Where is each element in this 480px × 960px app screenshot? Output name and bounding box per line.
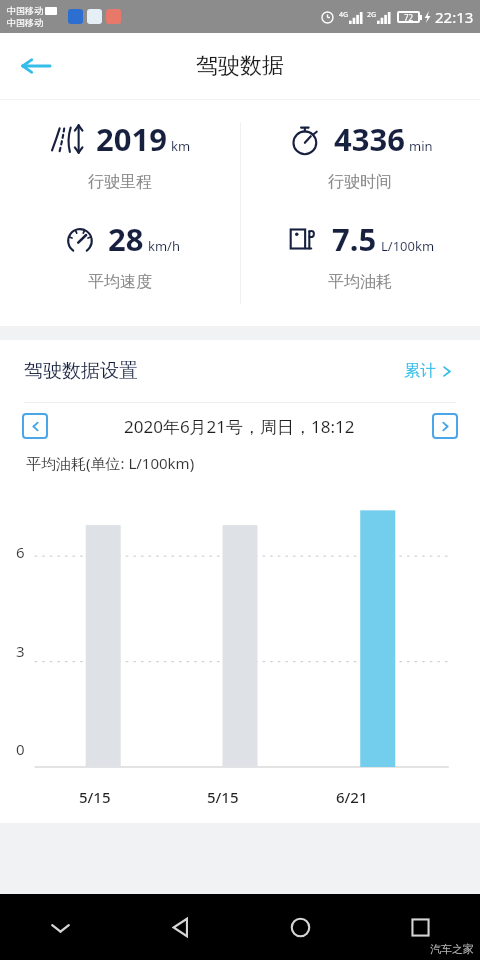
- button[interactable]: Previous day: [22, 413, 48, 439]
- staticText: 4336: [334, 118, 405, 160]
- staticText: 平均速度: [88, 272, 152, 292]
- staticText: 3: [16, 641, 25, 661]
- button[interactable]: 4336: [240, 116, 480, 192]
- staticText: 5/15: [207, 787, 239, 807]
- staticText: 0: [16, 739, 25, 759]
- staticText: 4G: [339, 10, 349, 20]
- staticText: 2019: [96, 118, 167, 160]
- staticText: 平均油耗(单位: L/100km): [26, 453, 195, 473]
- button[interactable]: Back: [120, 894, 240, 960]
- staticText: 汽车之家: [430, 942, 474, 956]
- staticText: 2020年6月21号，周日，18:12: [124, 415, 355, 438]
- button[interactable]: 28: [0, 216, 240, 292]
- staticText: 累计: [404, 361, 436, 381]
- staticText: 5/15: [79, 787, 111, 807]
- staticText: 驾驶数据设置: [24, 359, 138, 383]
- staticText: 行驶里程: [88, 172, 152, 192]
- staticText: L/100km: [381, 237, 435, 255]
- staticText: 行驶时间: [328, 172, 392, 192]
- staticText: 平均油耗: [328, 272, 392, 292]
- staticText: min: [409, 137, 433, 155]
- staticText: 72: [404, 12, 414, 23]
- button[interactable]: 累计: [400, 353, 456, 389]
- button[interactable]: Recent apps: [360, 894, 480, 960]
- button[interactable]: Home: [240, 894, 360, 960]
- button[interactable]: Back: [8, 38, 64, 94]
- staticText: km/h: [148, 237, 180, 255]
- button[interactable]: 7.5: [240, 216, 480, 292]
- staticText: 6: [16, 542, 25, 562]
- staticText: 28: [108, 218, 144, 260]
- staticText: 6/21: [336, 787, 368, 807]
- button[interactable]: Hide keyboard: [0, 894, 120, 960]
- staticText: 中国移动: [7, 17, 43, 28]
- staticText: 2G: [367, 10, 377, 20]
- button[interactable]: 2019: [0, 116, 240, 192]
- staticText: 22:13: [435, 7, 474, 27]
- staticText: 中国移动: [7, 5, 43, 16]
- staticText: 驾驶数据: [196, 52, 284, 80]
- staticText: 7.5: [332, 218, 377, 260]
- staticText: km: [171, 137, 191, 155]
- button[interactable]: Next day: [432, 413, 458, 439]
